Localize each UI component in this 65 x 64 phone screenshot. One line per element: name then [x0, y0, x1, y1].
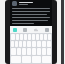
- button[interactable]: Media: [10, 26, 20, 33]
- button[interactable]: Key: [48, 34, 51, 40]
- button[interactable]: Key: [32, 34, 35, 40]
- button[interactable]: Gallery: [20, 26, 30, 33]
- button[interactable]: Key: [47, 41, 51, 47]
- button[interactable]: Delete: [41, 26, 52, 33]
- button[interactable]: Key: [42, 41, 46, 47]
- button[interactable]: Key: [28, 34, 31, 40]
- button[interactable]: Key: [11, 34, 15, 40]
- button[interactable]: Key: [11, 41, 14, 47]
- button[interactable]: Key: [24, 34, 27, 40]
- button[interactable]: Key: [27, 41, 31, 47]
- button[interactable]: Key: [15, 41, 18, 47]
- button[interactable]: Key: [20, 34, 23, 40]
- button[interactable]: Key: [32, 41, 36, 47]
- button[interactable]: Key: [16, 34, 19, 40]
- button[interactable]: Key: [44, 34, 47, 40]
- button[interactable]: Poll: [30, 26, 41, 33]
- button[interactable]: Key: [37, 41, 41, 47]
- button[interactable]: [10, 0, 52, 26]
- button[interactable]: Key: [36, 34, 39, 40]
- button[interactable]: Key: [23, 41, 26, 47]
- button[interactable]: Key: [40, 34, 43, 40]
- button[interactable]: Key: [19, 41, 22, 47]
